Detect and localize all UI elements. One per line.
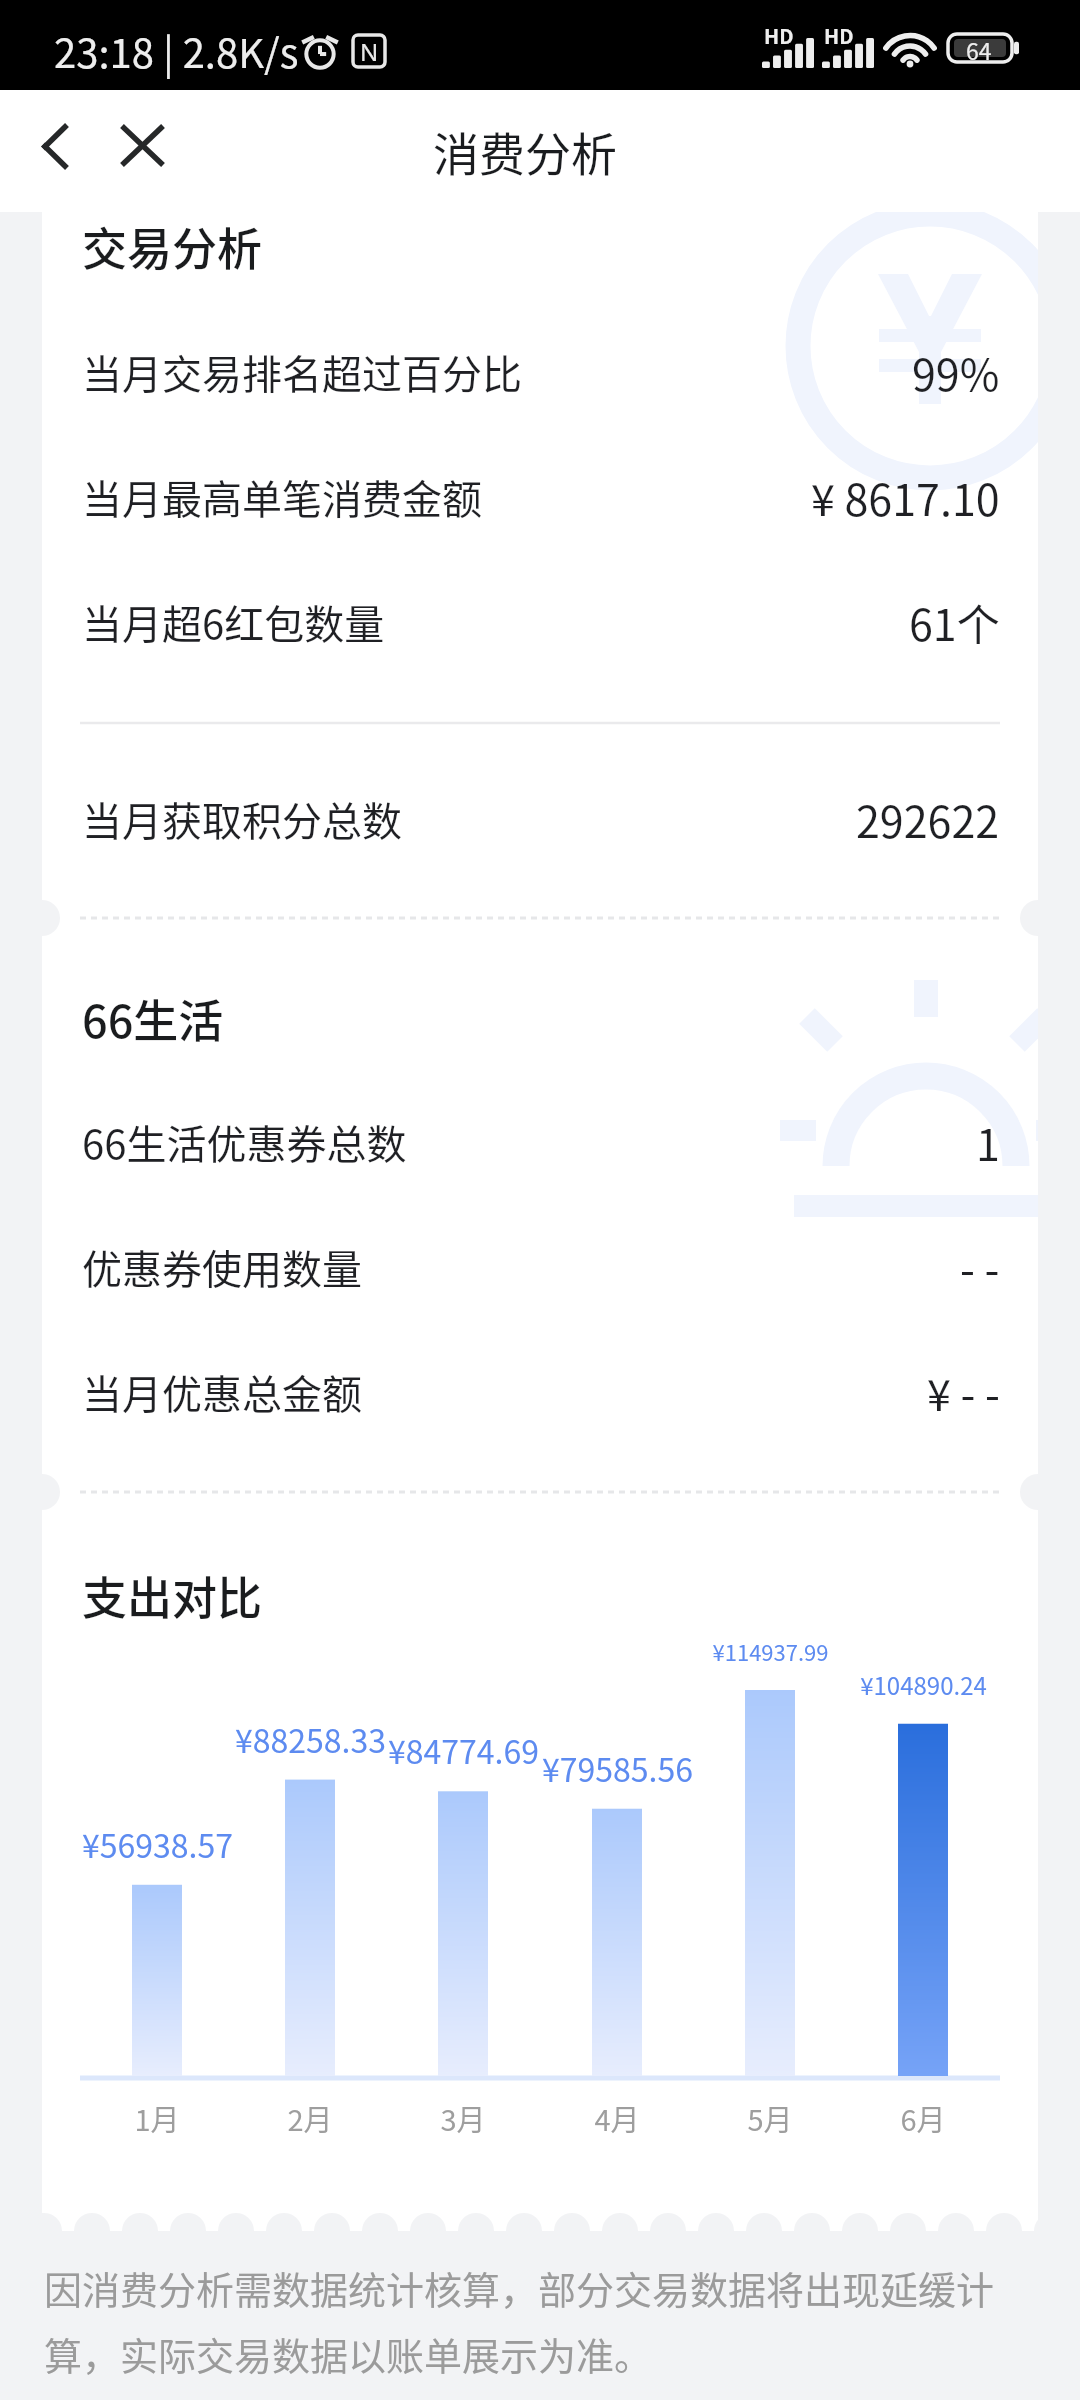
staticText: 23:18 | 2.8K/s <box>54 22 299 80</box>
staticText: 6月 <box>900 2097 946 2139</box>
staticText: 因消费分析需数据统计核算，部分交易数据将出现延缓计算，实际交易数据以账单展示为准… <box>44 2260 1034 2381</box>
staticText: 2月 <box>287 2097 333 2139</box>
staticText: 66生活 <box>82 986 224 1051</box>
button[interactable]: 当月获取积分总数 <box>42 764 1038 874</box>
staticText: 4月 <box>594 2097 640 2139</box>
button[interactable]: 当月优惠总金额 <box>42 1337 1038 1447</box>
staticText: ¥114937.99 <box>712 1635 829 1667</box>
staticText: 292622 <box>856 788 1000 850</box>
staticText: 当月最高单笔消费金额 <box>82 468 482 526</box>
staticText: 当月获取积分总数 <box>82 790 402 848</box>
staticText: 66生活优惠券总数 <box>82 1113 407 1171</box>
staticText: - - <box>960 1236 1000 1298</box>
staticText: ¥79585.56 <box>542 1745 693 1791</box>
button[interactable]: 当月交易排名超过百分比 <box>42 317 1038 427</box>
staticText: 交易分析 <box>82 214 263 279</box>
staticText: 支出对比 <box>82 1563 263 1628</box>
staticText: ¥88258.33 <box>235 1716 386 1762</box>
staticText: HD <box>824 21 854 50</box>
button[interactable]: Back <box>12 104 96 188</box>
button[interactable]: 当月超6红包数量 <box>42 567 1038 677</box>
staticText: 64 <box>966 33 992 61</box>
staticText: 当月优惠总金额 <box>82 1363 362 1421</box>
button[interactable]: 当月最高单笔消费金额 <box>42 442 1038 552</box>
staticText: N <box>360 35 379 68</box>
staticText: ¥104890.24 <box>860 1667 987 1702</box>
staticText: 5月 <box>747 2097 793 2139</box>
staticText: 优惠券使用数量 <box>82 1238 362 1296</box>
staticText: ¥56938.57 <box>82 1821 233 1867</box>
staticText: 1月 <box>134 2097 180 2139</box>
button[interactable]: 66生活优惠券总数 <box>42 1087 1038 1197</box>
staticText: 99% <box>912 341 1000 403</box>
staticText: HD <box>764 21 794 50</box>
staticText: 当月交易排名超过百分比 <box>82 343 522 401</box>
staticText: 3月 <box>440 2097 486 2139</box>
staticText: 1 <box>976 1111 1000 1173</box>
staticText: 当月超6红包数量 <box>82 593 385 651</box>
button[interactable]: Close <box>100 103 184 187</box>
staticText: ¥ 8617.10 <box>811 466 1000 528</box>
staticText: 61个 <box>909 591 1000 653</box>
staticText: ¥ - - <box>927 1361 1000 1423</box>
button[interactable]: 优惠券使用数量 <box>42 1212 1038 1322</box>
staticText: ¥84774.69 <box>388 1727 539 1773</box>
staticText: 消费分析 <box>433 118 617 185</box>
